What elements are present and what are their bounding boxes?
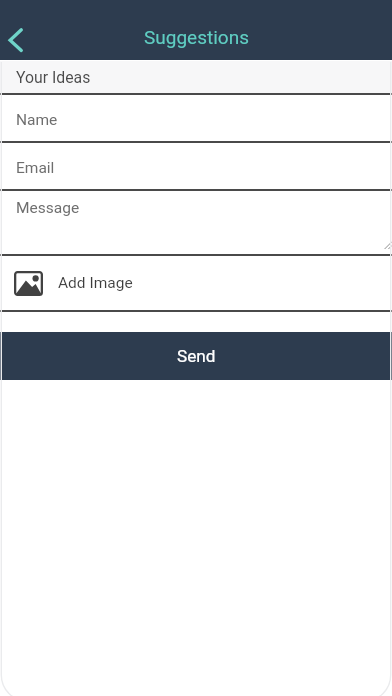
button[interactable]: Add Image [0, 256, 392, 310]
staticText: Add Image [58, 274, 133, 292]
button[interactable]: Name [0, 95, 392, 141]
staticText: Suggestions [144, 26, 249, 48]
staticText: Your Ideas [16, 68, 91, 87]
staticText: Name [16, 111, 58, 129]
staticText: Send [177, 346, 216, 366]
button[interactable]: Send [0, 332, 392, 380]
staticText: Message [16, 199, 80, 217]
button[interactable]: Message [0, 191, 392, 254]
button[interactable]: Back [0, 20, 30, 60]
staticText: Email [16, 159, 55, 177]
button[interactable]: Email [0, 143, 392, 189]
